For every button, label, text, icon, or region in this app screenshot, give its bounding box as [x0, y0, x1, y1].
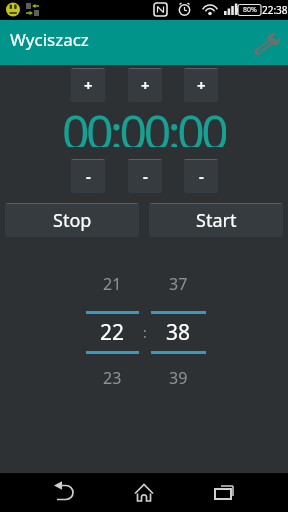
staticText: 23 — [103, 367, 122, 389]
button[interactable]: - — [128, 159, 162, 193]
staticText: 22 — [100, 318, 125, 347]
staticText: 22:38 — [262, 3, 288, 17]
staticText: : — [143, 323, 147, 342]
button[interactable]: - — [184, 159, 218, 193]
button[interactable] — [47, 475, 83, 509]
button[interactable] — [126, 475, 162, 509]
button[interactable]: + — [184, 68, 218, 102]
button[interactable]: 38 — [151, 314, 206, 350]
staticText: Stop — [53, 208, 92, 233]
button[interactable] — [205, 475, 241, 509]
staticText: - — [143, 166, 148, 186]
staticText: - — [86, 166, 91, 186]
staticText: 00:00:00 — [62, 99, 226, 147]
staticText: Start — [196, 208, 237, 233]
button[interactable]: + — [71, 68, 105, 102]
staticText: 39 — [169, 367, 188, 389]
button[interactable]: + — [128, 68, 162, 102]
staticText: 80% — [243, 5, 257, 15]
staticText: - — [199, 166, 204, 186]
staticText: + — [84, 75, 93, 95]
staticText: + — [141, 75, 150, 95]
staticText: 21 — [103, 273, 122, 295]
button[interactable]: Stop — [5, 203, 139, 237]
staticText: 38 — [166, 318, 191, 347]
button[interactable]: Start — [149, 203, 283, 237]
staticText: + — [197, 75, 206, 95]
staticText: 37 — [169, 273, 188, 295]
staticText: Wyciszacz — [10, 28, 89, 51]
button[interactable]: 22 — [86, 314, 139, 350]
button[interactable]: - — [71, 159, 105, 193]
button[interactable] — [249, 29, 285, 57]
